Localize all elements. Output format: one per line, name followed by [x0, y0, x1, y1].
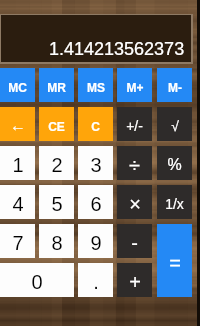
staticText: 2 — [51, 154, 63, 176]
button[interactable]: 6 — [78, 185, 113, 219]
staticText: 7 — [12, 232, 24, 254]
staticText: - — [131, 232, 138, 254]
button[interactable]: 7 — [0, 224, 35, 258]
button[interactable]: +/- — [117, 107, 152, 141]
button[interactable]: MR — [39, 68, 74, 102]
button[interactable]: 3 — [78, 146, 113, 180]
staticText: 1/x — [165, 196, 184, 212]
button[interactable]: % — [157, 146, 192, 180]
staticText: M+ — [126, 81, 144, 94]
button[interactable]: MC — [0, 68, 35, 102]
staticText: % — [167, 156, 182, 174]
staticText: × — [129, 193, 141, 215]
button[interactable]: 8 — [39, 224, 74, 258]
button[interactable]: 0 — [0, 263, 74, 297]
button[interactable]: √ — [157, 107, 192, 141]
staticText: 8 — [51, 232, 63, 254]
staticText: MS — [87, 81, 105, 94]
staticText: √ — [171, 118, 179, 134]
button[interactable]: . — [78, 263, 113, 297]
button[interactable]: = — [157, 224, 192, 297]
staticText: 5 — [51, 193, 63, 215]
button[interactable]: M+ — [117, 68, 152, 102]
button[interactable]: ÷ — [117, 146, 152, 180]
button[interactable]: × — [117, 185, 152, 219]
staticText: ← — [10, 117, 26, 135]
button[interactable]: + — [117, 263, 152, 297]
button[interactable]: 5 — [39, 185, 74, 219]
staticText: 1 — [12, 154, 24, 176]
button[interactable]: 4 — [0, 185, 35, 219]
staticText: CE — [48, 120, 65, 133]
staticText: +/- — [126, 118, 143, 134]
button[interactable]: MS — [78, 68, 113, 102]
button[interactable]: ← — [0, 107, 35, 141]
staticText: 0 — [31, 271, 43, 293]
staticText: 1.414213562373 — [49, 39, 185, 59]
staticText: = — [169, 252, 181, 274]
staticText: M- — [168, 81, 182, 94]
staticText: 4 — [12, 193, 24, 215]
staticText: . — [93, 271, 99, 293]
staticText: MC — [8, 81, 27, 94]
staticText: 3 — [90, 154, 102, 176]
staticText: + — [129, 271, 141, 293]
button[interactable]: - — [117, 224, 152, 258]
button[interactable]: C — [78, 107, 113, 141]
staticText: 6 — [90, 193, 102, 215]
staticText: ÷ — [129, 154, 140, 176]
button[interactable]: 9 — [78, 224, 113, 258]
button[interactable]: 1/x — [157, 185, 192, 219]
button[interactable]: M- — [157, 68, 192, 102]
button[interactable]: 2 — [39, 146, 74, 180]
staticText: MR — [47, 81, 66, 94]
button[interactable]: 1 — [0, 146, 35, 180]
staticText: C — [91, 120, 100, 133]
staticText: 9 — [90, 232, 102, 254]
button[interactable]: CE — [39, 107, 74, 141]
